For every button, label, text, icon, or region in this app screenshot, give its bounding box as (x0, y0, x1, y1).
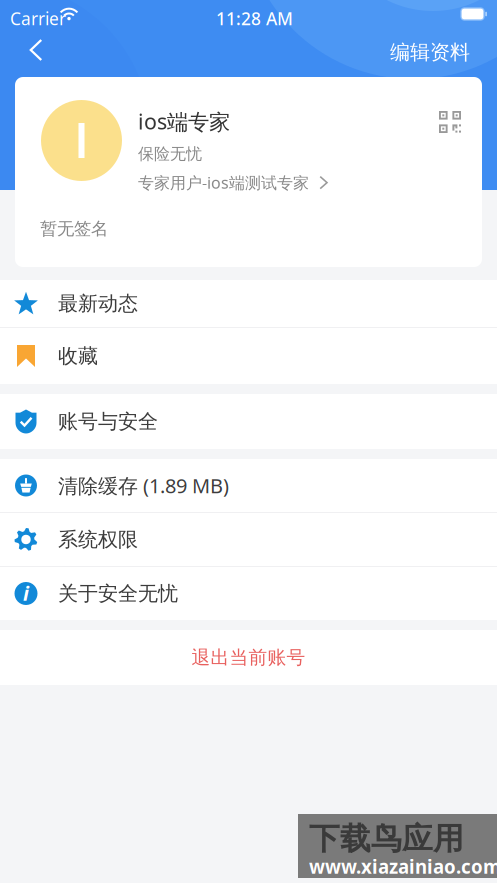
staticText: 编辑资料 (390, 40, 470, 65)
staticText: 暂无签名 (40, 218, 108, 239)
button[interactable]: 编辑资料 (378, 28, 494, 77)
button[interactable]: 系统权限 (0, 513, 497, 567)
staticText: 专家用户-ios端测试专家 (138, 172, 309, 193)
staticText: 最新动态 (58, 291, 138, 316)
staticText: Carrier (10, 7, 66, 30)
button[interactable]: 收藏 (0, 328, 497, 384)
button[interactable]: i (0, 567, 497, 620)
staticText: 退出当前账号 (191, 646, 305, 669)
button[interactable]: 返回 (14, 28, 58, 72)
staticText: 清除缓存 (1.89 MB) (58, 472, 229, 499)
staticText: ios端专家 (138, 107, 230, 135)
staticText: www.xiazainiao.com (309, 854, 497, 879)
staticText: 下载鸟应用 (309, 820, 464, 858)
button[interactable]: 账号与安全 (0, 394, 497, 449)
button[interactable]: 退出当前账号 (0, 630, 497, 685)
staticText: 保险无忧 (138, 144, 202, 164)
button[interactable]: 专家用户-ios端测试专家 (138, 172, 328, 193)
button[interactable]: 二维码 (434, 106, 466, 138)
staticText: 11:28 AM (216, 7, 293, 30)
staticText: i (23, 580, 29, 606)
staticText: 关于安全无忧 (58, 581, 178, 606)
staticText: 账号与安全 (58, 409, 158, 434)
button[interactable]: 最新动态 (0, 280, 497, 328)
staticText: 系统权限 (58, 527, 138, 552)
staticText: 收藏 (58, 344, 98, 368)
button[interactable]: 清除缓存 (1.89 MB) (0, 459, 497, 513)
